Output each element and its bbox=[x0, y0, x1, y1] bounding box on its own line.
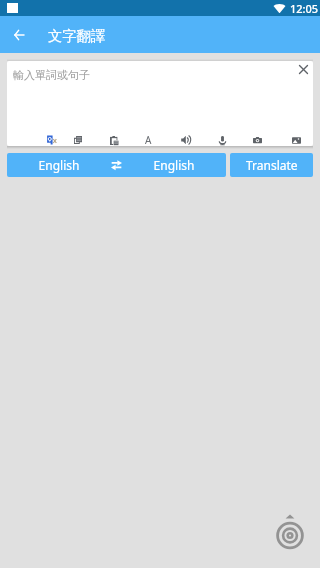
button[interactable]: Copy bbox=[65, 127, 91, 146]
button[interactable]: Voice input bbox=[209, 127, 235, 146]
button[interactable]: Gallery bbox=[283, 127, 309, 146]
button[interactable]: Speak bbox=[173, 127, 199, 146]
staticText: English bbox=[122, 157, 226, 173]
button[interactable]: English bbox=[7, 153, 226, 177]
button[interactable]: Clear bbox=[293, 61, 313, 80]
staticText: English bbox=[7, 157, 111, 173]
staticText: 輸入單詞或句子 bbox=[13, 68, 90, 82]
button[interactable]: Camera bbox=[244, 127, 270, 146]
staticText: 12:05 bbox=[290, 1, 319, 16]
button[interactable]: Back bbox=[5, 21, 33, 49]
button[interactable]: Translate bbox=[230, 153, 313, 177]
staticText: 文字翻譯 bbox=[48, 27, 106, 45]
button[interactable]: Translate bbox=[38, 127, 64, 146]
button[interactable]: Assistive touch bbox=[274, 512, 306, 544]
button[interactable]: Paste bbox=[101, 127, 127, 146]
staticText: A bbox=[145, 133, 152, 146]
staticText: Translate bbox=[246, 157, 298, 173]
button[interactable]: Text size bbox=[135, 127, 161, 146]
